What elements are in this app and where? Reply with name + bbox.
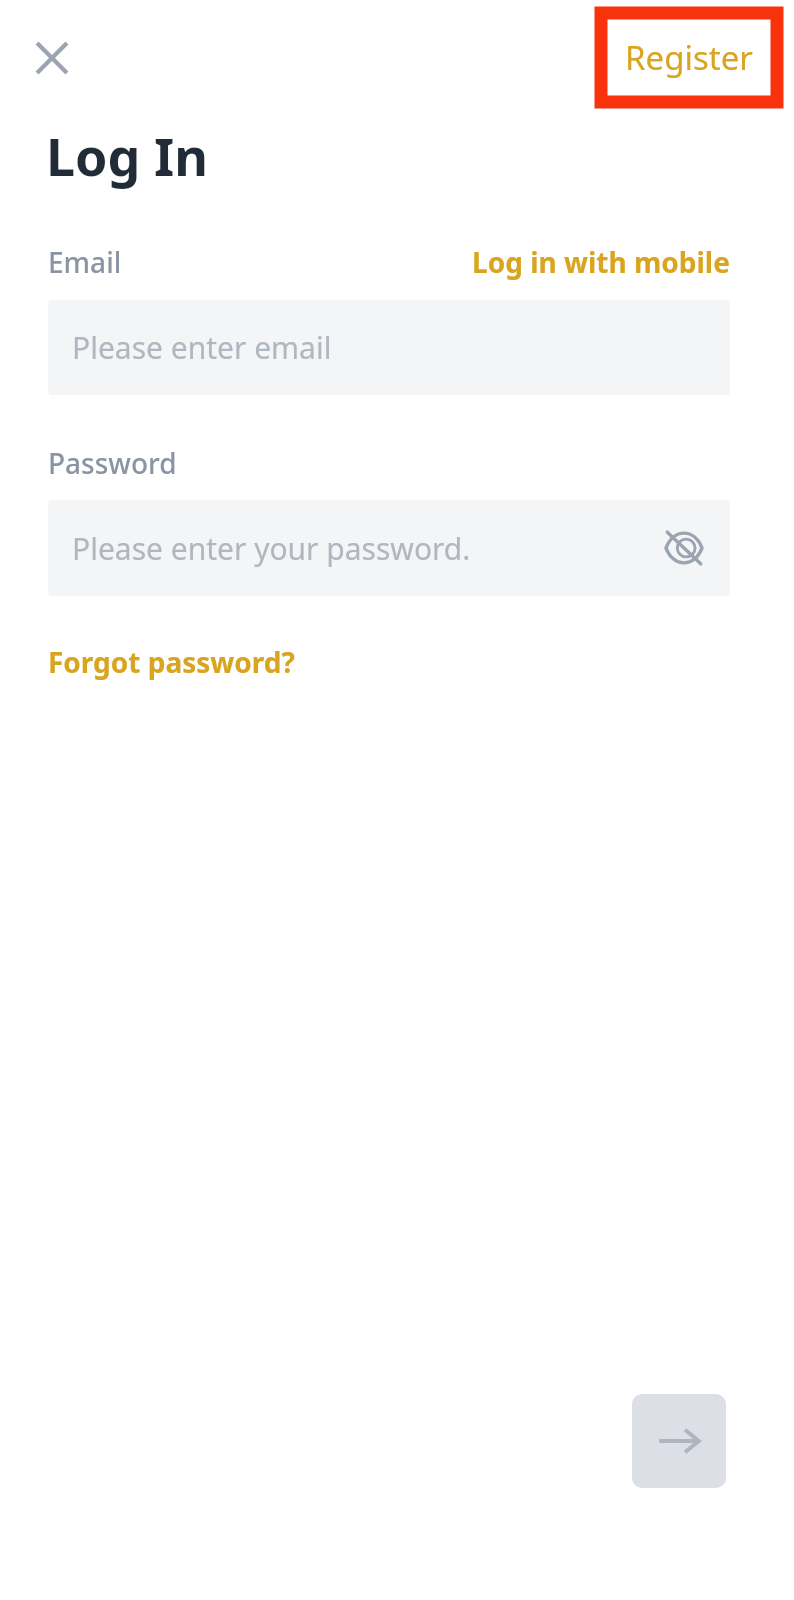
button[interactable]: Log in with mobile [472, 243, 730, 281]
staticText: Email [48, 243, 122, 281]
staticText: Password [48, 444, 177, 482]
button[interactable]: Show password [652, 516, 716, 580]
staticText: Log In [46, 120, 208, 191]
button[interactable]: Please enter your password. [48, 500, 730, 596]
button[interactable]: Submit [632, 1394, 726, 1488]
button[interactable]: Please enter email [48, 300, 730, 395]
staticText: Forgot password? [48, 643, 295, 681]
staticText: Log in with mobile [472, 243, 730, 281]
button[interactable]: Forgot password? [48, 643, 295, 681]
staticText: Register [625, 35, 753, 80]
button[interactable]: Close [22, 28, 82, 88]
staticText: Please enter email [72, 327, 332, 368]
staticText: Please enter your password. [72, 528, 471, 569]
button[interactable]: Register [598, 10, 780, 105]
